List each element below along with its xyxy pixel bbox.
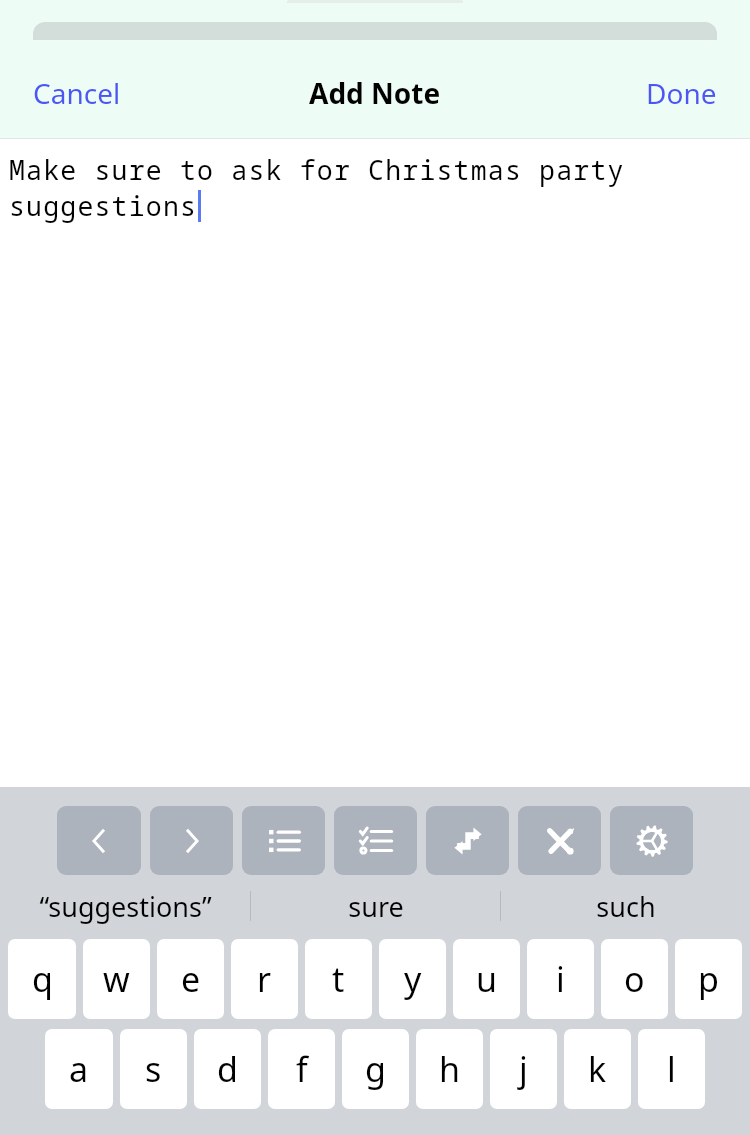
button[interactable]: s [120, 1029, 187, 1109]
button[interactable]: r [231, 939, 298, 1019]
button[interactable]: Add Note [301, 66, 449, 120]
button[interactable]: l [638, 1029, 705, 1109]
staticText: s [145, 1046, 162, 1092]
button[interactable]: y [379, 939, 446, 1019]
button[interactable]: t [305, 939, 372, 1019]
staticText: k [588, 1046, 607, 1092]
button[interactable]: sure [251, 875, 500, 937]
button[interactable]: q [8, 939, 76, 1019]
staticText: e [181, 956, 201, 1002]
staticText: “suggestions” [39, 888, 212, 925]
staticText: Done [646, 74, 717, 112]
button[interactable]: a [45, 1029, 113, 1109]
button[interactable]: i [527, 939, 594, 1019]
staticText: Make sure to ask for Christmas party [9, 152, 625, 188]
button[interactable]: f [268, 1029, 335, 1109]
staticText: l [667, 1046, 676, 1092]
staticText: w [103, 956, 130, 1002]
staticText: t [332, 956, 345, 1002]
staticText: a [69, 1046, 89, 1092]
staticText: r [257, 956, 272, 1002]
staticText: such [596, 888, 656, 925]
button[interactable]: Next [150, 806, 233, 875]
button[interactable]: e [157, 939, 224, 1019]
button[interactable]: Bulleted list [242, 806, 325, 875]
staticText: h [439, 1046, 461, 1092]
staticText: j [519, 1046, 528, 1092]
button[interactable]: j [490, 1029, 557, 1109]
staticText: d [217, 1046, 238, 1092]
button[interactable]: Reorder [426, 806, 509, 875]
button[interactable]: Done [613, 66, 750, 120]
button[interactable]: Cancel [0, 66, 154, 120]
staticText: i [556, 956, 565, 1002]
button[interactable]: d [194, 1029, 261, 1109]
staticText: p [698, 956, 719, 1002]
button[interactable]: “suggestions” [0, 875, 250, 937]
staticText: q [32, 956, 53, 1002]
button[interactable]: o [601, 939, 668, 1019]
staticText: g [365, 1046, 386, 1092]
button[interactable]: Tools [518, 806, 601, 875]
button[interactable]: Settings [610, 806, 693, 875]
button[interactable]: w [83, 939, 150, 1019]
staticText: sure [348, 888, 404, 925]
button[interactable]: k [564, 1029, 631, 1109]
staticText: Cancel [33, 74, 121, 112]
button[interactable]: such [501, 875, 750, 937]
button[interactable]: p [675, 939, 742, 1019]
staticText: suggestions [9, 188, 198, 224]
button[interactable]: g [342, 1029, 409, 1109]
button[interactable]: Checklist [334, 806, 417, 875]
staticText: y [404, 956, 422, 1002]
staticText: o [624, 956, 645, 1002]
button[interactable]: Previous [57, 806, 141, 875]
button[interactable]: u [453, 939, 520, 1019]
button[interactable]: h [416, 1029, 483, 1109]
staticText: f [296, 1046, 308, 1092]
staticText: Add Note [309, 74, 441, 112]
staticText: u [476, 956, 498, 1002]
